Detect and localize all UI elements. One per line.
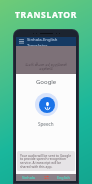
staticText: Cancel (40, 165, 52, 170)
staticText: Sinhala-English Translator (27, 37, 74, 46)
staticText: Your audio will be sent to Google to pro… (20, 153, 72, 169)
staticText: Google (36, 78, 57, 86)
staticText: TRANSLATOR (15, 9, 78, 21)
staticText: English (57, 175, 70, 180)
staticText: Speech (38, 121, 54, 127)
button[interactable]: Cancel (35, 163, 57, 172)
button[interactable]: Sinhala (16, 174, 41, 181)
button[interactable]: Swap languages (41, 174, 51, 181)
button[interactable]: Speak now (35, 93, 58, 116)
staticText: Sinhala (22, 175, 35, 180)
button[interactable]: Open navigation menu (18, 38, 25, 45)
staticText: ඔබේ කියන දේ ඇහුම්කන් දෙන්නම් (18, 62, 74, 71)
button[interactable]: English (51, 174, 76, 181)
